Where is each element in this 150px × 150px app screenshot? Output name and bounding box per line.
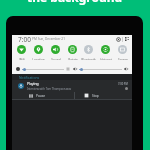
- button[interactable]: Location: [31, 43, 46, 60]
- button[interactable]: Pause: [12, 92, 74, 99]
- staticText: Sound: [51, 58, 61, 60]
- staticText: Wifi: [19, 58, 25, 60]
- staticText: Hotspot: [100, 58, 112, 60]
- staticText: Screen: [118, 58, 128, 60]
- staticText: Pause: [36, 94, 46, 98]
- staticText: 7:00 PM: [118, 82, 128, 86]
- button[interactable]: Screen: [115, 43, 130, 60]
- staticText: Bluetooth: [81, 58, 96, 60]
- button[interactable]: Wifi: [14, 43, 29, 60]
- staticText: PM Sun, December 21: [32, 37, 66, 41]
- staticText: 7:00: [18, 35, 31, 43]
- button[interactable]: Settings: [115, 36, 121, 42]
- button[interactable]: Stop: [75, 92, 132, 99]
- staticText: Stop: [92, 94, 99, 98]
- staticText: Notifications: [19, 75, 40, 80]
- staticText: Playing: [27, 81, 39, 86]
- staticText: Location: [32, 58, 45, 60]
- button[interactable]: Rotate: [65, 43, 80, 60]
- button[interactable]: Sound: [48, 43, 63, 60]
- button[interactable]: Bluetooth: [81, 43, 96, 60]
- staticText: Interview with Tom Thompson.wav: [27, 87, 72, 91]
- button[interactable]: Hotspot: [98, 43, 113, 60]
- staticText: Rotate: [68, 58, 78, 60]
- staticText: the background: [27, 0, 123, 5]
- button[interactable]: Edit tiles: [124, 36, 130, 42]
